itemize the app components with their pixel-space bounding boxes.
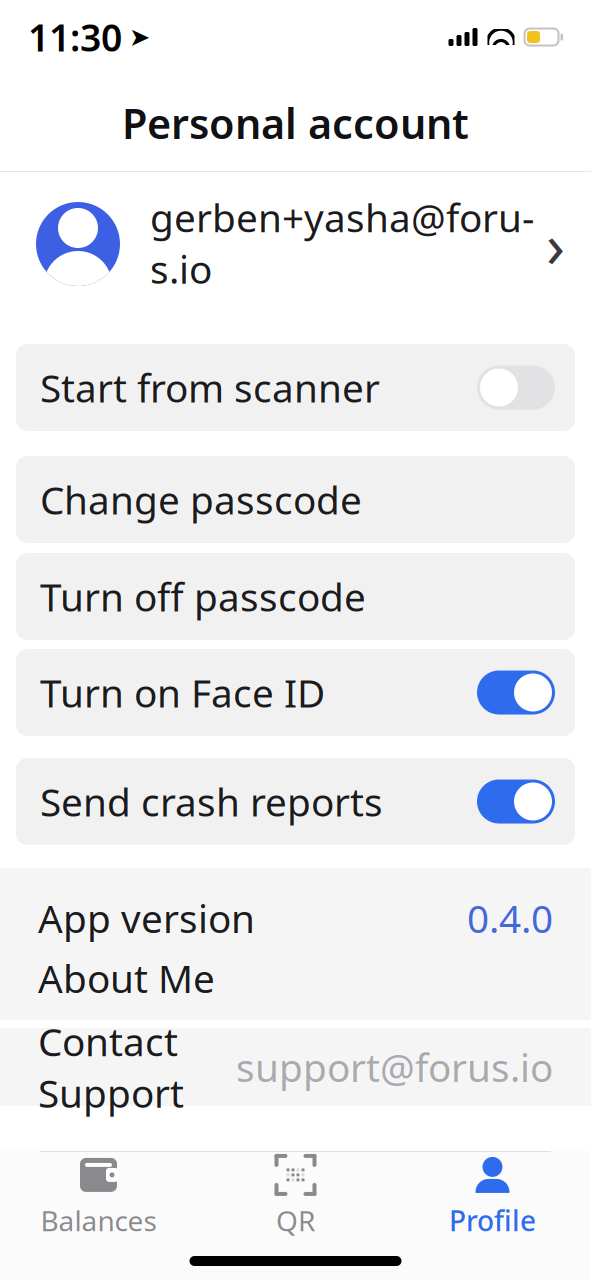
button[interactable]: QR (197, 1152, 394, 1242)
staticText: Change passcode (40, 474, 362, 525)
button[interactable]: gerben+yasha@forus.io (0, 184, 591, 304)
staticText: gerben+yasha@forus.io (150, 192, 534, 294)
staticText: App version (38, 892, 255, 944)
button[interactable]: Contact Support (0, 1028, 591, 1106)
button[interactable]: Profile (394, 1152, 591, 1242)
staticText: Balances (40, 1202, 156, 1239)
button[interactable]: Turn off passcode (16, 553, 575, 640)
button[interactable]: Balances (0, 1152, 197, 1242)
staticText: Profile (449, 1202, 536, 1239)
staticText: Contact Support (38, 1016, 184, 1118)
staticText: Turn on Face ID (40, 667, 325, 718)
staticText: Turn off passcode (40, 571, 366, 622)
staticText: › (546, 203, 565, 285)
staticText: 0.4.0 (467, 892, 553, 944)
staticText: Start from scanner (40, 362, 380, 413)
button[interactable]: Turn on Face ID (16, 649, 575, 736)
button[interactable]: App version (0, 888, 591, 948)
button[interactable]: About Me (0, 948, 591, 1008)
staticText: Personal account (122, 96, 469, 150)
button[interactable]: Send crash reports (16, 758, 575, 845)
staticText: Send crash reports (40, 776, 383, 827)
button[interactable]: Change passcode (16, 456, 575, 543)
staticText: support@forus.io (236, 1041, 553, 1093)
button[interactable]: Start from scanner (16, 344, 575, 431)
staticText: QR (276, 1202, 315, 1239)
staticText: ➤ (129, 23, 150, 51)
staticText: 11:30 (28, 12, 122, 62)
staticText: About Me (38, 952, 215, 1004)
